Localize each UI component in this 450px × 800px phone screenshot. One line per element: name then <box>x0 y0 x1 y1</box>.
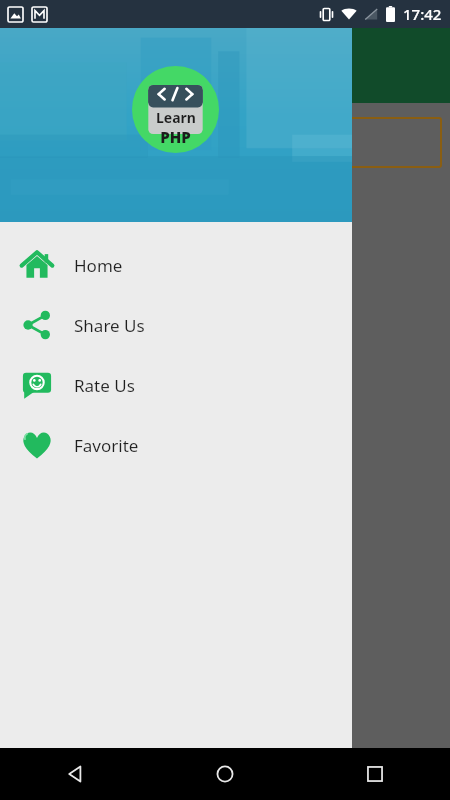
button[interactable]: Rate Us <box>0 355 352 415</box>
button[interactable]: Recent apps <box>300 748 450 800</box>
staticText: Rate Us <box>74 374 135 397</box>
button[interactable]: Favorite <box>0 415 352 475</box>
button[interactable]: Home <box>150 748 300 800</box>
staticText: Share Us <box>74 314 145 337</box>
staticText: PHP <box>160 127 191 147</box>
staticText: Home <box>74 254 123 277</box>
staticText: Learn <box>156 108 196 127</box>
staticText: 17:42 <box>403 4 442 24</box>
button[interactable]: Back <box>0 748 150 800</box>
button[interactable]: Share Us <box>0 295 352 355</box>
staticText: Favorite <box>74 434 139 457</box>
button[interactable]: Home <box>0 235 352 295</box>
